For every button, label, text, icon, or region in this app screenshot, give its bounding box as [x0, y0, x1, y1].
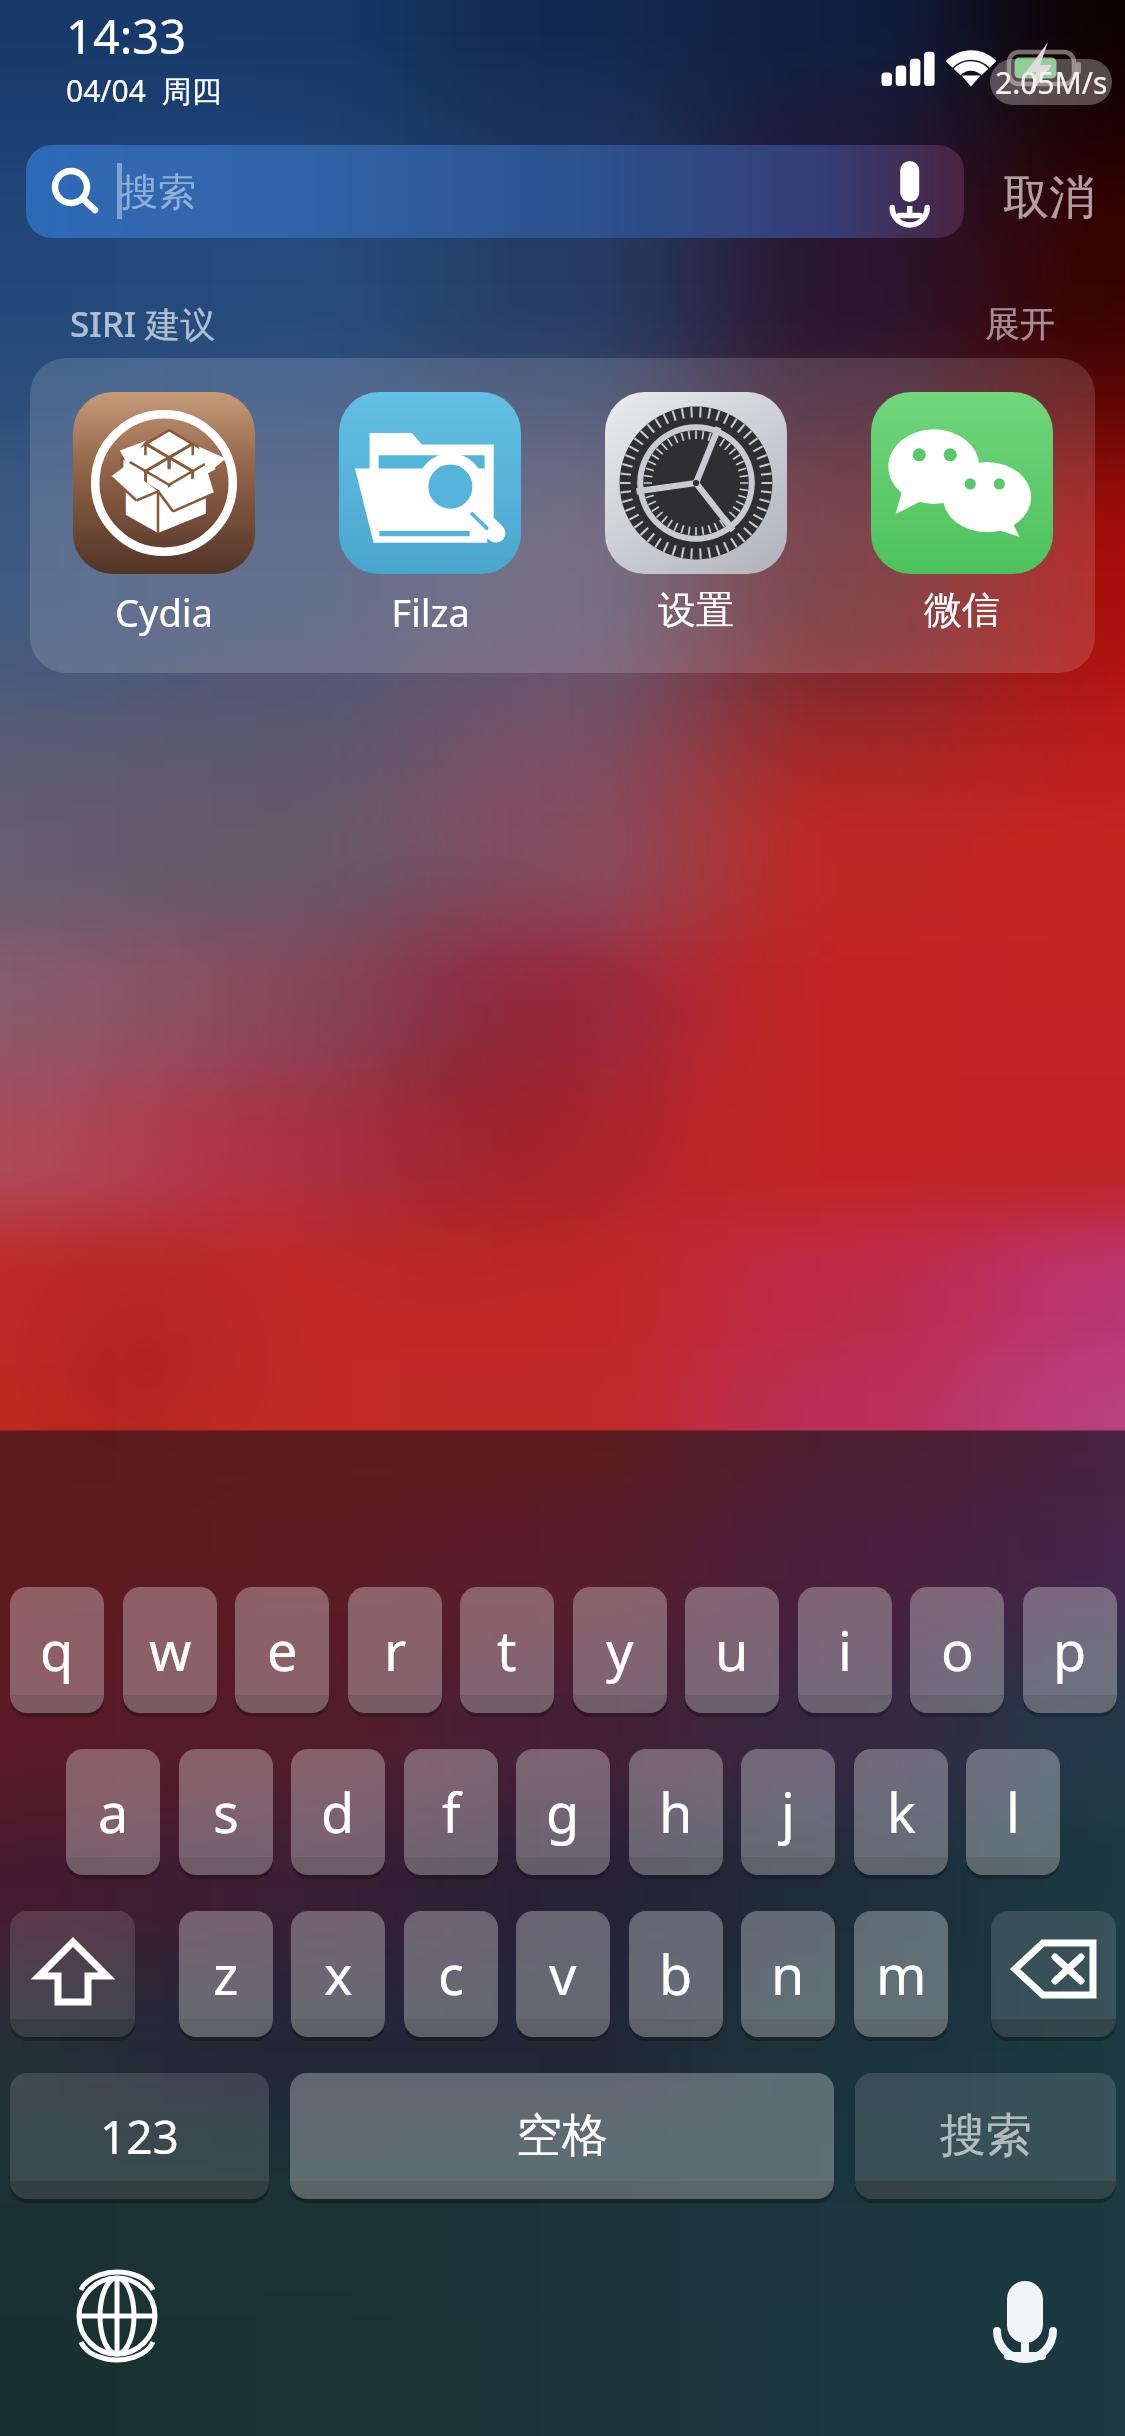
- staticText: Cydia: [115, 586, 213, 638]
- button[interactable]: 微信: [829, 358, 1095, 634]
- staticText: m: [876, 1937, 927, 2011]
- staticText: r: [384, 1613, 407, 1687]
- button[interactable]: 取消: [997, 163, 1101, 233]
- staticText: c: [438, 1937, 464, 2011]
- button[interactable]: z: [179, 1911, 273, 2037]
- staticText: x: [324, 1937, 353, 2011]
- staticText: y: [606, 1613, 634, 1687]
- button[interactable]: Backspace: [991, 1911, 1116, 2037]
- staticText: t: [497, 1613, 517, 1687]
- button[interactable]: l: [966, 1749, 1060, 1875]
- staticText: 展开: [985, 302, 1055, 346]
- button[interactable]: 空格: [290, 2073, 834, 2199]
- button[interactable]: i: [798, 1587, 892, 1713]
- staticText: h: [659, 1775, 693, 1849]
- staticText: 搜索: [940, 2107, 1032, 2165]
- staticText: SIRI 建议: [70, 300, 216, 348]
- button[interactable]: Filza: [297, 358, 563, 638]
- staticText: p: [1053, 1613, 1087, 1687]
- staticText: v: [549, 1937, 577, 2011]
- button[interactable]: 搜索: [855, 2073, 1116, 2199]
- staticText: 设置: [658, 586, 734, 634]
- staticText: u: [715, 1613, 749, 1687]
- staticText: 123: [100, 2105, 179, 2168]
- button[interactable]: 设置: [563, 358, 829, 634]
- button[interactable]: t: [460, 1587, 554, 1713]
- button[interactable]: m: [854, 1911, 948, 2037]
- staticText: i: [838, 1613, 852, 1687]
- button[interactable]: j: [741, 1749, 835, 1875]
- staticText: f: [442, 1775, 461, 1849]
- staticText: e: [267, 1613, 298, 1687]
- staticText: o: [941, 1613, 974, 1687]
- staticText: s: [213, 1775, 239, 1849]
- staticText: 04/04 周四: [66, 70, 222, 111]
- staticText: b: [659, 1937, 693, 2011]
- button[interactable]: Shift: [10, 1911, 135, 2037]
- button[interactable]: o: [910, 1587, 1004, 1713]
- button[interactable]: h: [629, 1749, 723, 1875]
- button[interactable]: n: [741, 1911, 835, 2037]
- button[interactable]: Cydia: [30, 358, 297, 638]
- button[interactable]: x: [291, 1911, 385, 2037]
- staticText: 微信: [924, 586, 1000, 634]
- staticText: d: [321, 1775, 355, 1849]
- staticText: l: [1006, 1775, 1020, 1849]
- button[interactable]: p: [1023, 1587, 1117, 1713]
- button[interactable]: r: [348, 1587, 442, 1713]
- button[interactable]: Voice search: [880, 155, 940, 223]
- staticText: j: [781, 1775, 795, 1849]
- button[interactable]: y: [573, 1587, 667, 1713]
- button[interactable]: u: [685, 1587, 779, 1713]
- button[interactable]: a: [66, 1749, 160, 1875]
- button[interactable]: w: [123, 1587, 217, 1713]
- staticText: n: [771, 1937, 805, 2011]
- staticText: a: [98, 1775, 129, 1849]
- button[interactable]: 123: [10, 2073, 269, 2199]
- staticText: 2.05M/s: [995, 62, 1108, 103]
- button[interactable]: Dictation: [986, 2275, 1066, 2355]
- button[interactable]: Change keyboard: [78, 2277, 156, 2355]
- button[interactable]: g: [516, 1749, 610, 1875]
- staticText: 空格: [516, 2107, 608, 2165]
- staticText: Filza: [391, 586, 470, 638]
- button[interactable]: s: [179, 1749, 273, 1875]
- button[interactable]: [26, 145, 964, 238]
- staticText: z: [213, 1937, 239, 2011]
- button[interactable]: c: [404, 1911, 498, 2037]
- button[interactable]: v: [516, 1911, 610, 2037]
- staticText: q: [40, 1613, 74, 1687]
- button[interactable]: 展开: [985, 302, 1055, 346]
- staticText: k: [887, 1775, 916, 1849]
- button[interactable]: e: [235, 1587, 329, 1713]
- staticText: g: [546, 1775, 580, 1849]
- staticText: 14:33: [66, 4, 187, 68]
- button[interactable]: k: [854, 1749, 948, 1875]
- staticText: 取消: [1003, 169, 1095, 227]
- button[interactable]: d: [291, 1749, 385, 1875]
- button[interactable]: b: [629, 1911, 723, 2037]
- staticText: w: [149, 1613, 192, 1687]
- button[interactable]: f: [404, 1749, 498, 1875]
- button[interactable]: q: [10, 1587, 104, 1713]
- staticText: 搜索: [120, 168, 196, 216]
